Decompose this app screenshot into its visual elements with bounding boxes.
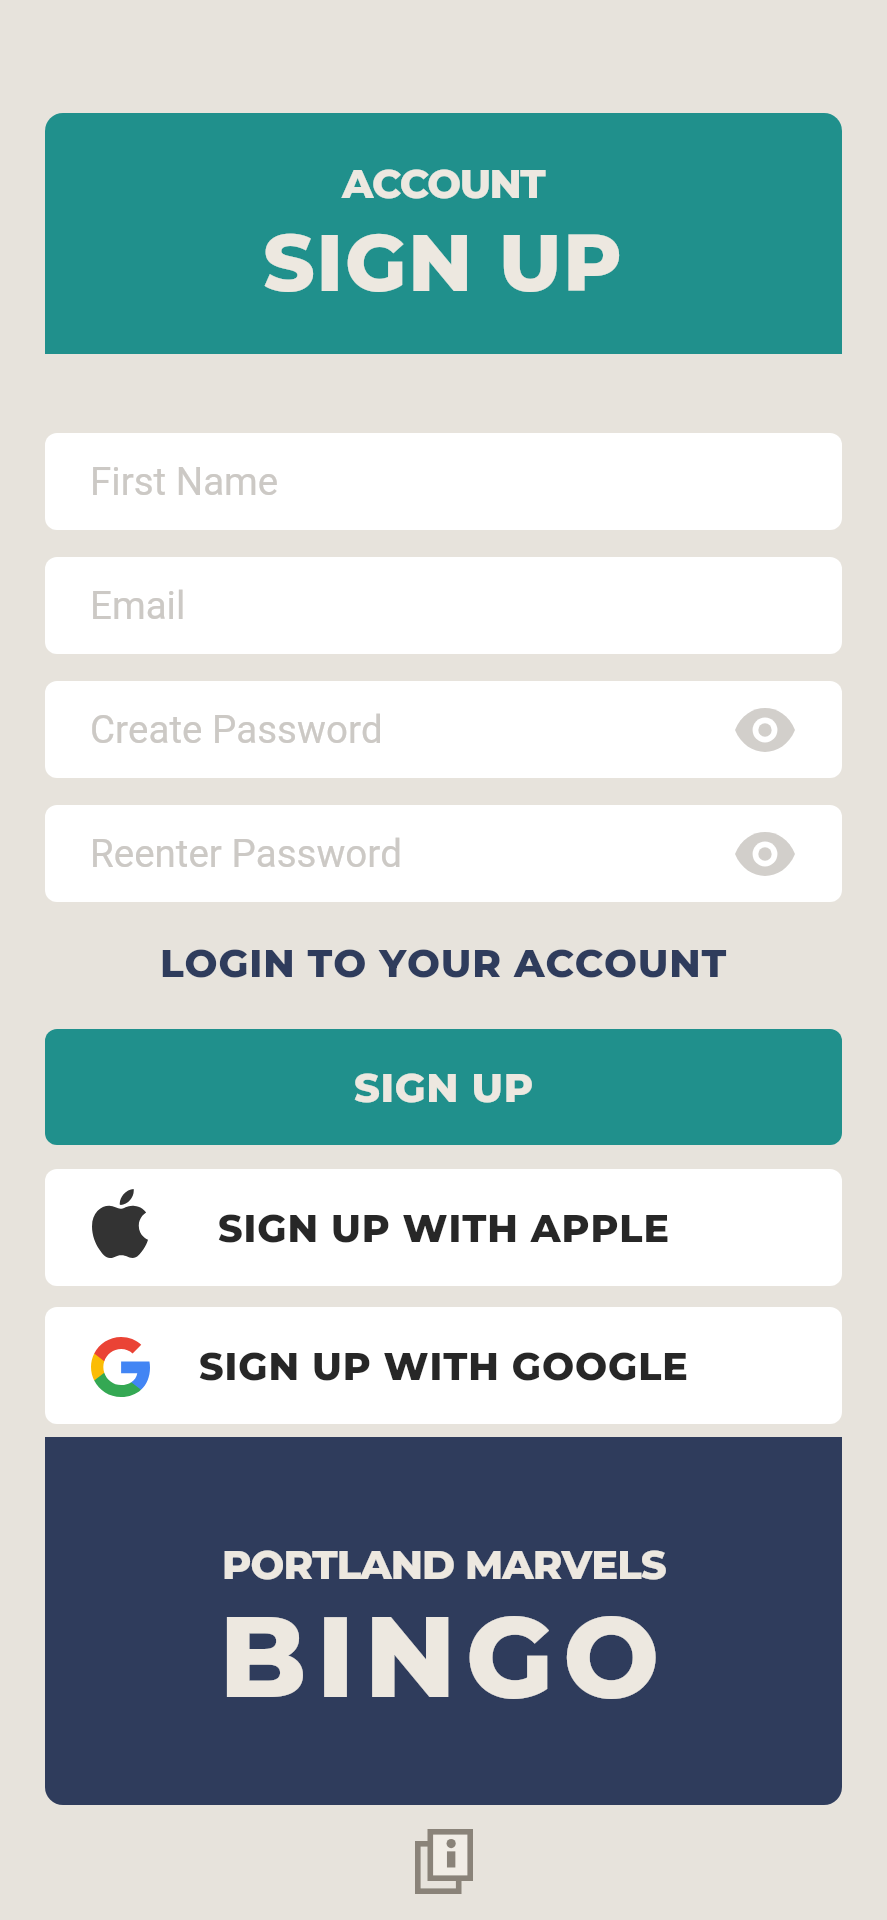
button[interactable]: Email bbox=[45, 557, 842, 654]
staticText: SIGN UP bbox=[354, 1063, 534, 1112]
staticText: PORTLAND MARVELS bbox=[222, 1540, 666, 1589]
button[interactable]: Info bbox=[411, 1825, 477, 1898]
button[interactable]: LOGIN TO YOUR ACCOUNT bbox=[0, 932, 887, 994]
button[interactable]: Create Password bbox=[45, 681, 842, 778]
button[interactable]: First Name bbox=[45, 433, 842, 530]
staticText: SIGN UP bbox=[263, 214, 624, 312]
button[interactable]: Show password bbox=[730, 829, 800, 879]
button[interactable]: SIGN UP WITH APPLE bbox=[45, 1169, 842, 1286]
staticText: SIGN UP WITH GOOGLE bbox=[199, 1343, 689, 1389]
staticText: Email bbox=[90, 583, 186, 628]
staticText: BINGO bbox=[219, 1587, 669, 1726]
staticText: ACCOUNT bbox=[342, 159, 545, 208]
staticText: First Name bbox=[90, 459, 279, 504]
button[interactable]: Reenter Password bbox=[45, 805, 842, 902]
staticText: Create Password bbox=[90, 707, 383, 752]
other: Info bbox=[415, 1829, 473, 1894]
staticText: Reenter Password bbox=[90, 831, 403, 876]
staticText: LOGIN TO YOUR ACCOUNT bbox=[160, 939, 728, 987]
staticText: SIGN UP WITH APPLE bbox=[218, 1205, 670, 1251]
button[interactable]: Show password bbox=[730, 705, 800, 755]
button[interactable]: SIGN UP WITH GOOGLE bbox=[45, 1307, 842, 1424]
button[interactable]: SIGN UP bbox=[45, 1029, 842, 1145]
